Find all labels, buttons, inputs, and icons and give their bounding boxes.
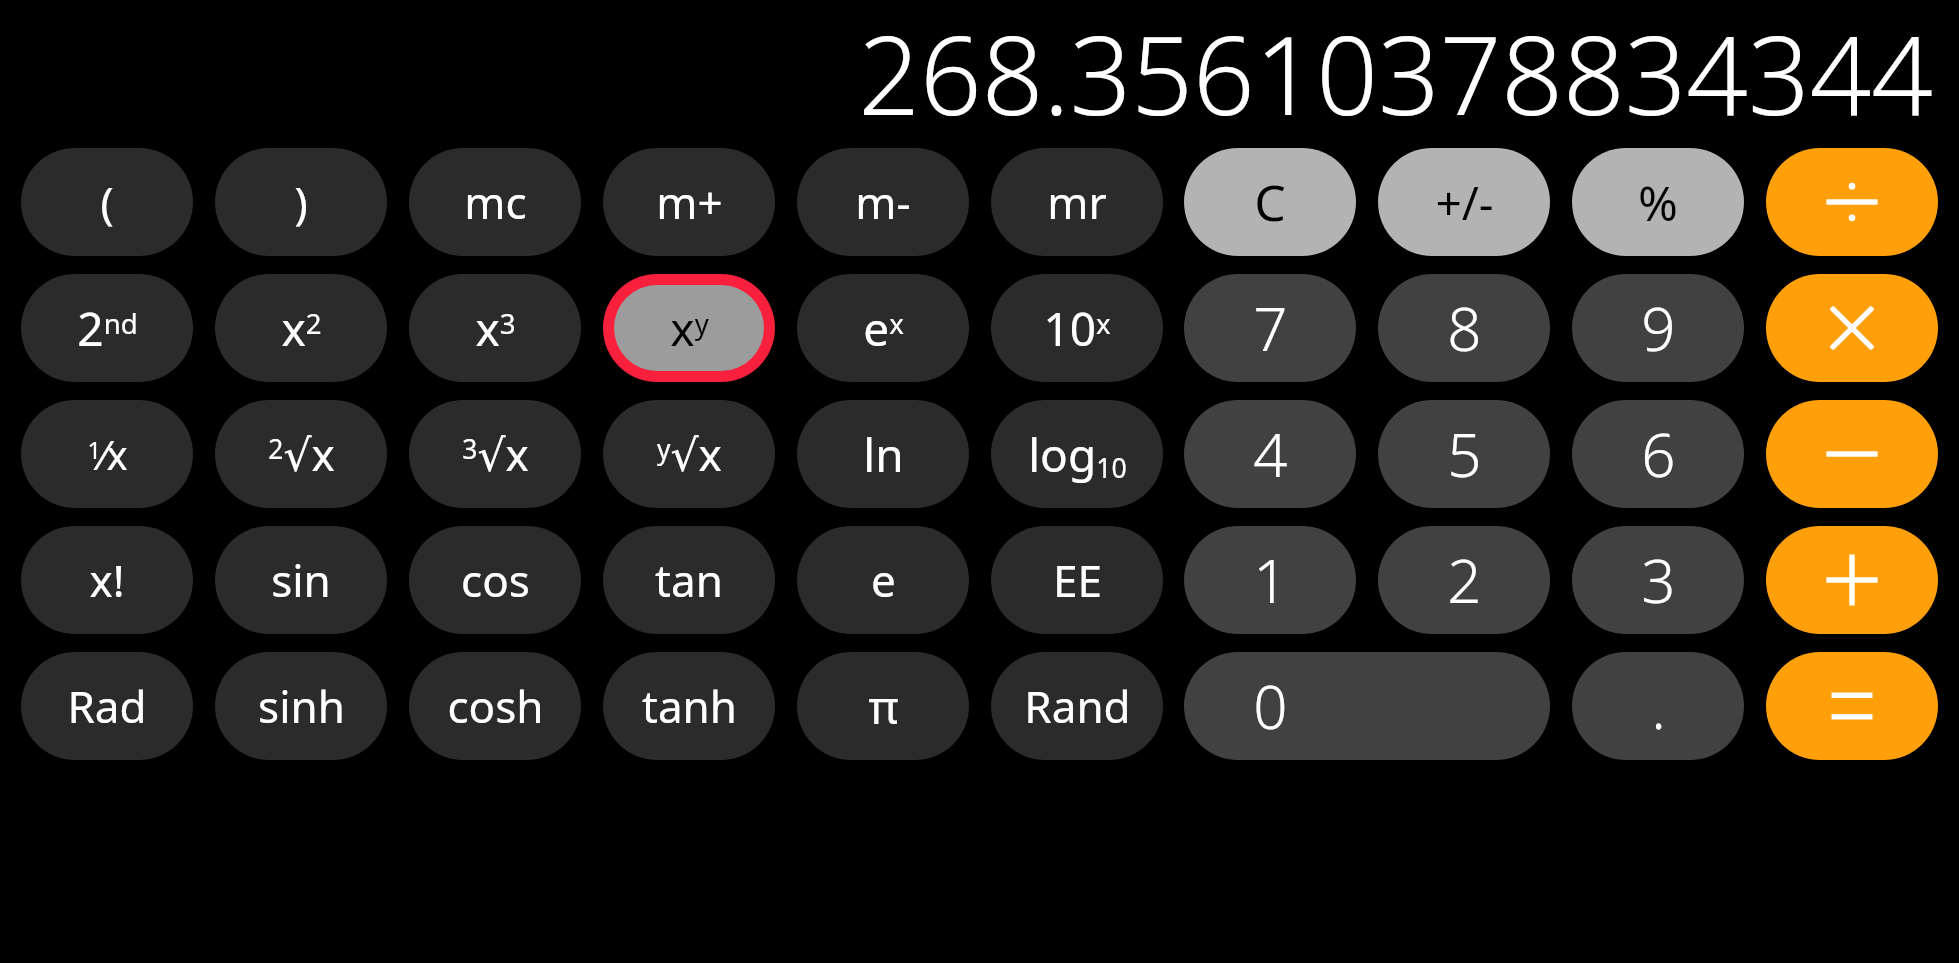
button[interactable]: 3 xyxy=(1572,526,1744,634)
button[interactable]: sin xyxy=(215,526,387,634)
button[interactable]: xy xyxy=(614,285,764,371)
staticText: ln xyxy=(863,423,904,486)
staticText: sinh xyxy=(258,676,345,736)
button[interactable]: m+ xyxy=(603,148,775,256)
button[interactable]: mr xyxy=(991,148,1163,256)
staticText: 268.35610378834344 xyxy=(858,0,1933,134)
staticText: m+ xyxy=(656,172,723,232)
button[interactable]: e xyxy=(797,526,969,634)
staticText: m- xyxy=(855,172,911,232)
button[interactable]: 3√x xyxy=(409,400,581,508)
staticText: 3√x xyxy=(462,424,529,484)
button[interactable]: 6 xyxy=(1572,400,1744,508)
staticText: π xyxy=(868,675,899,738)
button[interactable]: y√x xyxy=(603,400,775,508)
button[interactable]: Rand xyxy=(991,652,1163,760)
staticText: 8 xyxy=(1447,287,1482,369)
button[interactable]: tanh xyxy=(603,652,775,760)
staticText: 1⁄x xyxy=(87,427,128,481)
staticText: tan xyxy=(655,550,723,610)
staticText: 3 xyxy=(1641,539,1676,621)
button[interactable]: 2 xyxy=(1378,526,1550,634)
button[interactable]: . xyxy=(1572,652,1744,760)
button[interactable]: 2nd xyxy=(21,274,193,382)
staticText: e xyxy=(871,550,896,610)
staticText: y√x xyxy=(657,424,722,484)
button[interactable]: 5 xyxy=(1378,400,1550,508)
button[interactable]: EE xyxy=(991,526,1163,634)
staticText: 6 xyxy=(1641,413,1676,495)
staticText: 4 xyxy=(1253,413,1288,495)
staticText: cos xyxy=(461,550,530,610)
button[interactable]: cosh xyxy=(409,652,581,760)
staticText: xy xyxy=(670,297,709,360)
button[interactable]: π xyxy=(797,652,969,760)
staticText: +/- xyxy=(1435,171,1494,234)
staticText: 7 xyxy=(1253,287,1288,369)
staticText: EE xyxy=(1053,550,1102,610)
button[interactable]: 1⁄x xyxy=(21,400,193,508)
button[interactable]: x3 xyxy=(409,274,581,382)
staticText: mr xyxy=(1047,172,1107,232)
button[interactable]: 0 xyxy=(1184,652,1550,760)
staticText: x! xyxy=(89,550,125,610)
staticText: 2 xyxy=(1447,539,1482,621)
button[interactable]: Multiply xyxy=(1766,274,1938,382)
staticText: x2 xyxy=(281,297,322,360)
staticText: Rand xyxy=(1024,676,1131,736)
button[interactable]: C xyxy=(1184,148,1356,256)
staticText: ex xyxy=(863,297,904,360)
button[interactable]: 7 xyxy=(1184,274,1356,382)
button[interactable]: sinh xyxy=(215,652,387,760)
button[interactable]: 4 xyxy=(1184,400,1356,508)
staticText: ( xyxy=(100,172,114,232)
button[interactable]: cos xyxy=(409,526,581,634)
button[interactable]: 1 xyxy=(1184,526,1356,634)
staticText: 2nd xyxy=(77,297,138,360)
staticText: 10x xyxy=(1043,297,1111,360)
button[interactable]: ( xyxy=(21,148,193,256)
staticText: 5 xyxy=(1447,413,1482,495)
button[interactable]: % xyxy=(1572,148,1744,256)
staticText: 9 xyxy=(1641,287,1676,369)
button[interactable]: 2√x xyxy=(215,400,387,508)
staticText: tanh xyxy=(642,676,737,736)
staticText: cosh xyxy=(447,676,544,736)
staticText: mc xyxy=(464,172,527,232)
button[interactable]: Equals xyxy=(1766,652,1938,760)
button[interactable]: m- xyxy=(797,148,969,256)
button[interactable]: Plus xyxy=(1766,526,1938,634)
button[interactable]: x2 xyxy=(215,274,387,382)
staticText: 1 xyxy=(1253,539,1288,621)
staticText: 0 xyxy=(1253,665,1288,747)
staticText: ) xyxy=(294,172,308,232)
staticText: Rad xyxy=(67,676,147,736)
staticText: 2√x xyxy=(268,424,335,484)
staticText: % xyxy=(1638,170,1678,235)
staticText: . xyxy=(1651,665,1666,747)
button[interactable]: mc xyxy=(409,148,581,256)
button[interactable]: log10 xyxy=(991,400,1163,508)
button[interactable]: ) xyxy=(215,148,387,256)
button[interactable]: ex xyxy=(797,274,969,382)
staticText: sin xyxy=(271,550,331,610)
staticText: C xyxy=(1254,168,1286,236)
button[interactable]: ln xyxy=(797,400,969,508)
button[interactable]: Rad xyxy=(21,652,193,760)
button[interactable]: x! xyxy=(21,526,193,634)
staticText: x3 xyxy=(475,297,516,360)
button[interactable]: 9 xyxy=(1572,274,1744,382)
button[interactable]: 10x xyxy=(991,274,1163,382)
staticText: log10 xyxy=(1028,423,1127,486)
button[interactable]: 8 xyxy=(1378,274,1550,382)
button[interactable]: Divide xyxy=(1766,148,1938,256)
button[interactable]: tan xyxy=(603,526,775,634)
button[interactable]: +/- xyxy=(1378,148,1550,256)
button[interactable]: Minus xyxy=(1766,400,1938,508)
